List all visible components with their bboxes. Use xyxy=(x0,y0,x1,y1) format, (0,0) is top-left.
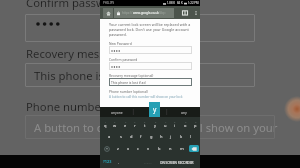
button[interactable]: anyone xyxy=(100,107,134,117)
staticText: Recovery mess xyxy=(26,46,105,61)
staticText: l xyxy=(190,134,192,139)
button[interactable]: Home xyxy=(103,8,113,18)
button[interactable]: any xyxy=(167,107,200,117)
staticText: 4 xyxy=(134,120,136,123)
staticText: k xyxy=(180,134,183,139)
staticText: j xyxy=(170,134,172,139)
staticText: 6 xyxy=(155,120,157,123)
staticText: www.google.co.uk xyxy=(133,11,159,15)
staticText: 84 K xyxy=(177,1,183,5)
button[interactable]: Space xyxy=(123,155,200,168)
staticText: z xyxy=(117,146,119,151)
button[interactable]: 6 xyxy=(150,117,160,130)
staticText: Recovery message (optional) xyxy=(109,73,154,77)
button[interactable]: 3 xyxy=(120,117,130,130)
staticText: A button to call this number will show o… xyxy=(109,95,183,99)
staticText: ?123 xyxy=(103,159,112,164)
button[interactable]: 7 xyxy=(160,117,170,130)
staticText: 5 xyxy=(144,120,146,123)
staticText: Confirm password xyxy=(109,57,138,61)
button[interactable]: j xyxy=(166,130,176,142)
button[interactable]: 8 xyxy=(170,117,180,130)
staticText: m xyxy=(180,146,184,151)
staticText: f xyxy=(140,134,142,139)
button[interactable]: k xyxy=(176,130,186,142)
staticText: c xyxy=(137,146,139,151)
button[interactable]: https:// xyxy=(114,8,174,18)
staticText: o xyxy=(184,123,187,128)
staticText: 2 xyxy=(114,120,116,123)
staticText: r xyxy=(134,123,136,128)
staticText: d xyxy=(130,134,133,139)
button[interactable]: v xyxy=(143,142,154,155)
staticText: PHILIPS xyxy=(103,1,115,5)
staticText: y xyxy=(154,123,157,128)
staticText: x xyxy=(127,146,130,151)
staticText: h xyxy=(160,134,163,139)
button[interactable]: 2 xyxy=(110,117,120,130)
button[interactable]: f xyxy=(136,130,146,142)
staticText: t xyxy=(144,123,146,128)
staticText: This phone is lost if ad xyxy=(111,80,146,84)
staticText: u xyxy=(164,123,167,128)
staticText: , xyxy=(118,159,120,164)
staticText: 1.88 K xyxy=(167,1,176,5)
button[interactable]: ?123 xyxy=(100,155,115,168)
button[interactable]: 0 xyxy=(190,117,200,130)
staticText: 0 xyxy=(195,120,197,123)
button[interactable]: 5 xyxy=(140,117,150,130)
button[interactable]: g xyxy=(146,130,156,142)
button[interactable]: x xyxy=(123,142,133,155)
button[interactable]: Shift xyxy=(100,142,113,155)
button[interactable]: 4 xyxy=(130,117,140,130)
staticText: ON SCREEN RECORDER xyxy=(160,161,194,165)
staticText: any xyxy=(181,110,187,115)
staticText: https:// xyxy=(122,11,133,15)
staticText: s xyxy=(120,134,122,139)
staticText: anyone xyxy=(111,110,123,115)
staticText: b xyxy=(158,146,161,151)
staticText: New Password xyxy=(109,41,132,45)
staticText: Phone number xyxy=(26,99,106,114)
button[interactable]: b xyxy=(154,142,165,155)
button[interactable]: 9 xyxy=(180,117,190,130)
button[interactable] xyxy=(134,107,167,117)
button[interactable]: d xyxy=(126,130,136,142)
button[interactable]: z xyxy=(113,142,123,155)
staticText: w xyxy=(113,123,117,128)
staticText: This phone is xyxy=(34,68,104,83)
staticText: e xyxy=(124,123,127,128)
button[interactable]: a xyxy=(104,130,115,142)
staticText: y xyxy=(153,105,157,114)
button[interactable]: , xyxy=(115,155,123,168)
staticText: /#q= xyxy=(159,11,166,15)
button[interactable]: More options xyxy=(192,6,199,19)
staticText: a xyxy=(108,134,111,139)
staticText: n xyxy=(169,146,172,151)
staticText: g xyxy=(150,134,153,139)
button[interactable]: 1 xyxy=(100,117,110,130)
button[interactable]: c xyxy=(133,142,143,155)
button[interactable]: l xyxy=(186,130,196,142)
staticText: Confirm passw xyxy=(26,0,105,10)
staticText: Phone number (optional) xyxy=(109,89,148,93)
button[interactable]: Backspace xyxy=(187,142,200,155)
staticText: A button to call this number will show o… xyxy=(34,120,284,135)
staticText: Your current lock screen will be replace… xyxy=(109,22,192,37)
staticText: 3 xyxy=(125,120,127,123)
staticText: 9 xyxy=(185,120,187,123)
staticText: 8 xyxy=(174,120,176,123)
button[interactable]: m xyxy=(176,142,187,155)
staticText: 7 xyxy=(165,120,167,123)
staticText: 1 xyxy=(105,120,107,123)
button[interactable]: n xyxy=(165,142,176,155)
staticText: q xyxy=(104,123,107,128)
button[interactable]: Tabs xyxy=(180,8,189,17)
button[interactable]: h xyxy=(156,130,166,142)
staticText: v xyxy=(147,146,150,151)
button[interactable]: s xyxy=(115,130,126,142)
staticText: p xyxy=(194,123,197,128)
staticText: English xyxy=(144,162,152,165)
staticText: 1:22 PM xyxy=(188,1,199,5)
staticText: i xyxy=(174,123,176,128)
